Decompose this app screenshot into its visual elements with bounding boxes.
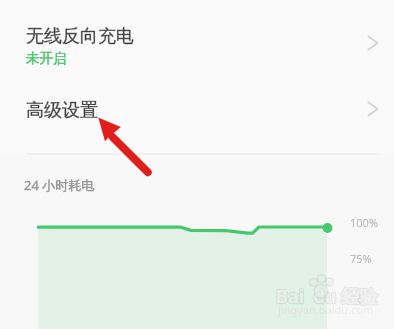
button[interactable]: 无线反向充电 <box>0 8 394 77</box>
staticText: 未开启 <box>26 50 67 67</box>
staticText: 75% <box>350 251 372 266</box>
staticText: 100% <box>350 215 379 230</box>
button[interactable]: 无线反向充电 <box>359 29 387 57</box>
staticText: 无线反向充电 <box>26 25 134 48</box>
button[interactable]: 高级设置 <box>359 95 387 123</box>
button[interactable]: 高级设置 <box>0 80 394 142</box>
staticText: jingyan.baidu.com <box>278 302 374 317</box>
staticText: 高级设置 <box>26 99 98 122</box>
staticText: 24 小时耗电 <box>24 176 95 194</box>
staticText: Bai du 经验 <box>276 284 378 309</box>
staticText: 24 小时耗电 <box>24 176 95 194</box>
staticText: 高级设置 <box>26 99 98 122</box>
staticText: Bai du 经验 <box>276 284 378 309</box>
staticText: 无线反向充电 <box>26 25 134 48</box>
staticText: 未开启 <box>26 50 67 67</box>
